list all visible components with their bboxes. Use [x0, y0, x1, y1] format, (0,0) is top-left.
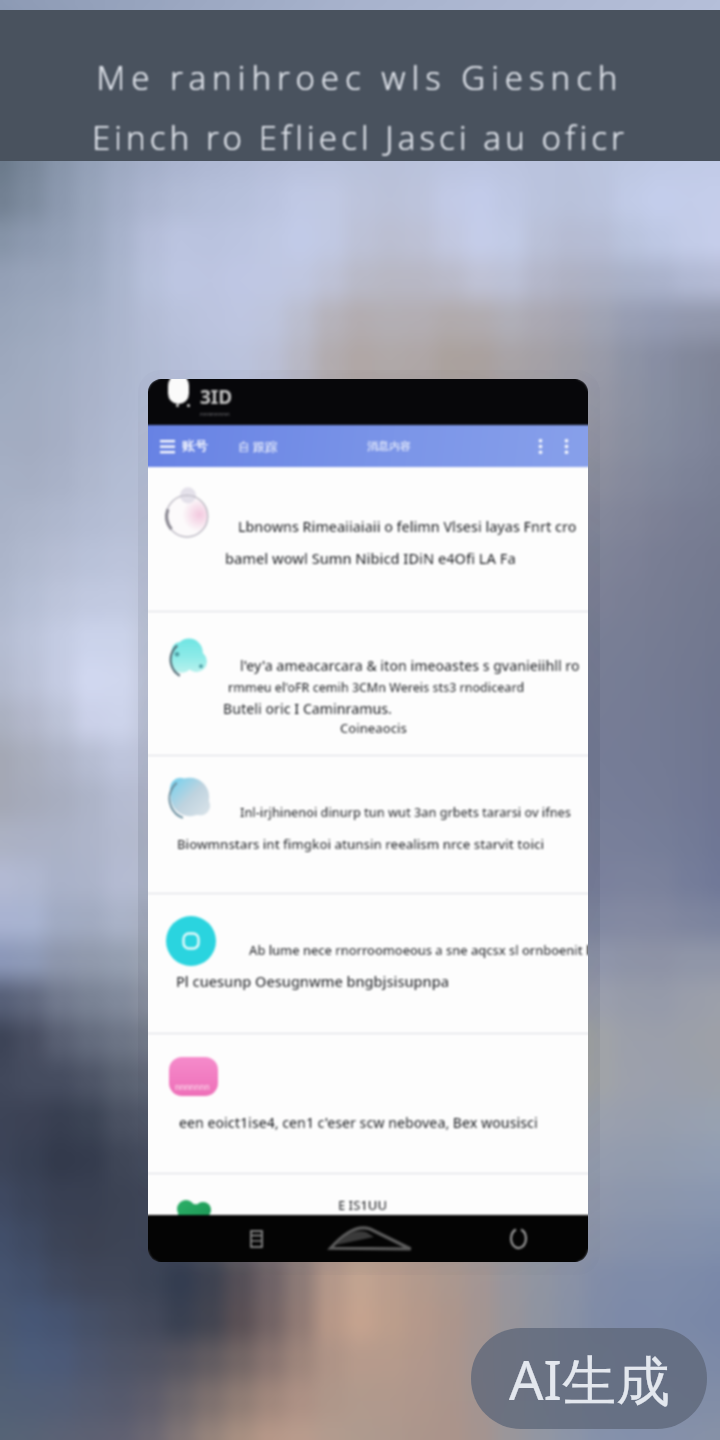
staticText: Me ranihroec wls Giesnch: [0, 55, 720, 100]
button[interactable]: E IS1UU: [148, 1174, 588, 1248]
staticText: nnnnnnn: [175, 1081, 210, 1092]
staticText: bamel wowl Sumn Nibicd IDiN e4Ofi LA Fa: [225, 548, 516, 568]
staticText: l'ey'a ameacarcara & iton imeoastes s gv…: [240, 656, 580, 675]
button[interactable]: Inl-irjhinenoi dinurp tun wut 3an grbets…: [148, 756, 588, 894]
staticText: rmmeu el'oFR cemih 3CMn Wereis sts3 rnod…: [228, 679, 525, 696]
staticText: Buteli oric I Caminramus.: [223, 699, 392, 718]
staticText: Pl cuesunp Oesugnwme bngbjsisupnpa: [176, 971, 449, 991]
staticText: 自 跟踪: [238, 438, 278, 454]
staticText: Biowmnstars int fimgkoi atunsin reealism…: [177, 835, 545, 853]
staticText: Einch ro Efliecl Jasci au oficr: [0, 115, 720, 160]
button[interactable]: Home: [326, 1217, 418, 1257]
button[interactable]: More options: [558, 434, 574, 458]
staticText: Lbnowns Rimeaiiaiaii o felimn Vlsesi lay…: [238, 517, 577, 536]
staticText: E IS1UU: [338, 1196, 387, 1214]
button[interactable]: Open navigation menu: [154, 433, 180, 459]
staticText: Inl-irjhinenoi dinurp tun wut 3an grbets…: [240, 804, 571, 821]
staticText: nnnnnnnn: [200, 410, 230, 418]
staticText: Coineaocis: [340, 719, 407, 737]
staticText: 消息内容: [367, 439, 411, 453]
button[interactable]: Ab lume nece rnorroomoeous a sne aqcsx s…: [148, 894, 588, 1034]
staticText: 账号: [182, 437, 208, 453]
button[interactable]: Back: [503, 1223, 533, 1253]
staticText: Ab lume nece rnorroomoeous a sne aqcsx s…: [249, 941, 588, 958]
button[interactable]: nnnnnnn: [148, 1034, 588, 1174]
button[interactable]: Recent apps: [242, 1225, 270, 1253]
button[interactable]: Search: [532, 434, 548, 458]
button[interactable]: l'ey'a ameacarcara & iton imeoastes s gv…: [148, 612, 588, 756]
staticText: AI生成: [509, 1342, 670, 1416]
button[interactable]: Lbnowns Rimeaiiaiaii o felimn Vlsesi lay…: [148, 467, 588, 612]
staticText: 3ID: [200, 384, 233, 410]
staticText: een eoict1ise4, cen1 c'eser scw nebovea,…: [179, 1113, 538, 1132]
